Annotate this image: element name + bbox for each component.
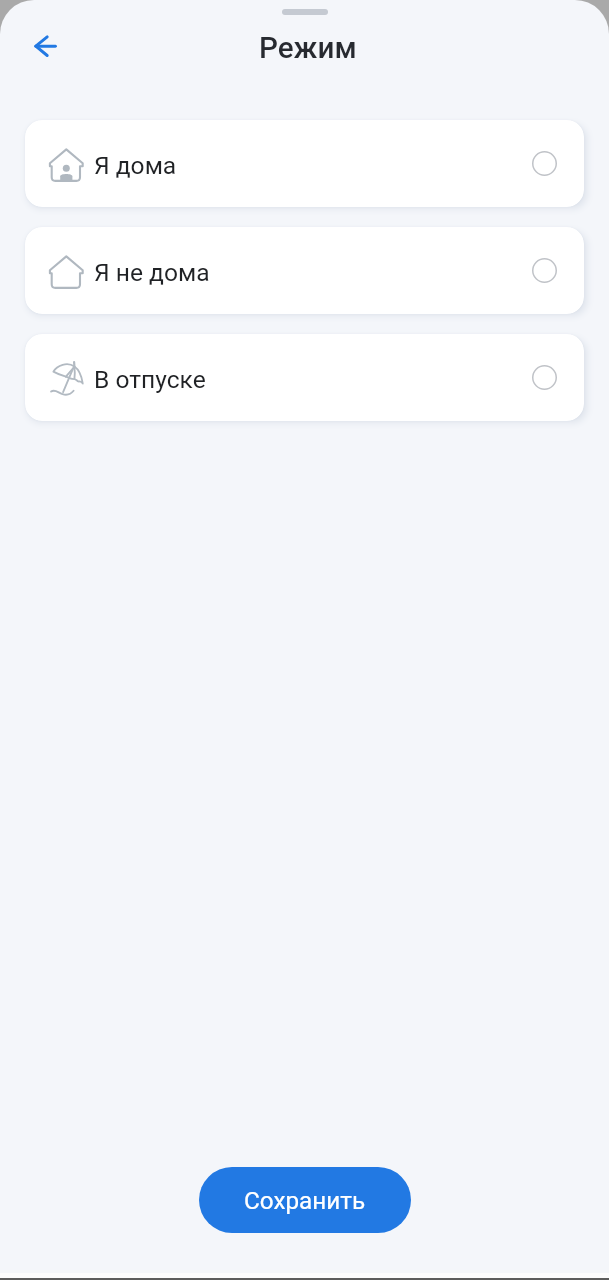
staticText: Режим bbox=[259, 31, 357, 66]
button[interactable]: Я не дома bbox=[25, 227, 584, 314]
button[interactable]: Сохранить bbox=[199, 1167, 411, 1233]
staticText: Я не дома bbox=[94, 258, 210, 287]
staticText: Я дома bbox=[94, 151, 177, 180]
button[interactable]: В отпуске bbox=[25, 334, 584, 421]
staticText: В отпуске bbox=[94, 365, 206, 394]
button[interactable]: Я дома bbox=[25, 120, 584, 207]
button[interactable]: Back bbox=[20, 22, 68, 70]
staticText: Сохранить bbox=[244, 1186, 366, 1214]
